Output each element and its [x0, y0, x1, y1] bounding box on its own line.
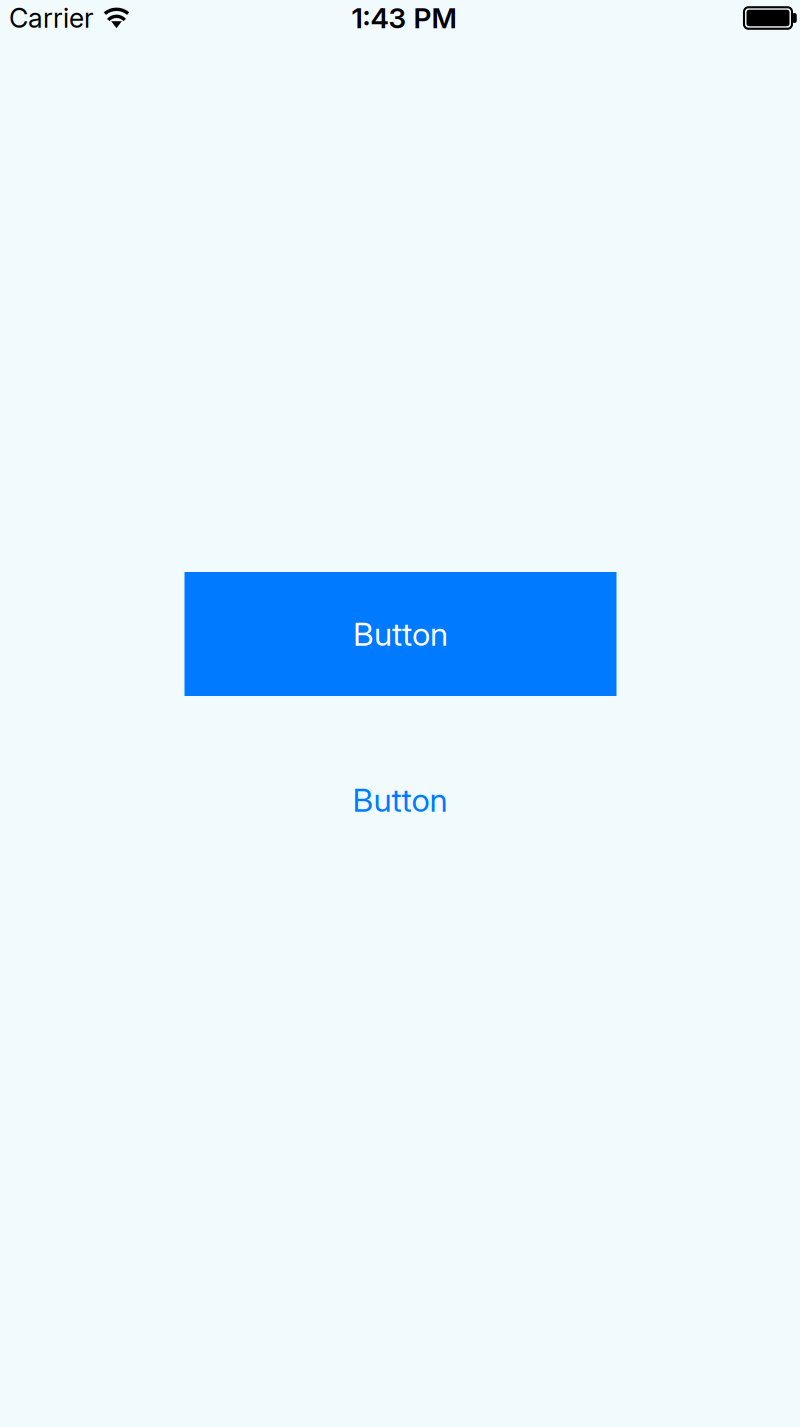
- staticText: Button: [353, 615, 448, 653]
- staticText: 1:43 PM: [351, 1, 456, 35]
- button[interactable]: Button: [184, 572, 616, 696]
- staticText: Carrier: [9, 2, 94, 34]
- staticText: Button: [352, 781, 447, 819]
- button[interactable]: Button: [330, 780, 470, 820]
